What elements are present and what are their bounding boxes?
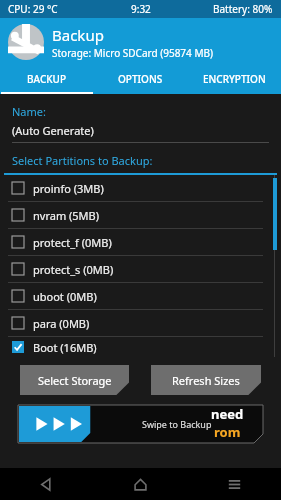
staticText: para (0MB)	[33, 316, 90, 331]
button[interactable]: Select Storage	[20, 365, 129, 395]
staticText: Swipe to Backup	[142, 418, 212, 430]
staticText: OPTIONS	[118, 72, 163, 86]
button[interactable]: Refresh Sizes	[151, 365, 261, 395]
button[interactable]: nvram (5MB)	[12, 202, 265, 228]
staticText: Backup	[52, 25, 104, 45]
staticText: Boot (16MB)	[33, 340, 97, 355]
staticText: Name:	[12, 104, 46, 119]
staticText: rom	[214, 423, 241, 441]
staticText: Select Partitions to Backup:	[12, 153, 153, 168]
staticText: www.needrom.com	[199, 441, 255, 443]
staticText: protect_f (0MB)	[33, 235, 112, 250]
button[interactable]: ENCRYPTION	[187, 66, 281, 92]
button[interactable]: Swipe to Backup	[18, 405, 263, 443]
staticText: need	[211, 405, 244, 423]
button[interactable]: para (0MB)	[12, 310, 265, 336]
staticText: Battery: 80%	[213, 2, 273, 16]
staticText: BACKUP	[27, 72, 67, 86]
staticText: CPU: 29 °C	[8, 2, 58, 16]
button[interactable]: Boot (16MB)	[12, 337, 265, 357]
button[interactable]: Home	[93, 468, 187, 500]
staticText: Select Storage	[38, 373, 112, 388]
staticText: nvram (5MB)	[33, 208, 100, 223]
staticText: (Auto Generate)	[12, 123, 94, 138]
button[interactable]: proinfo (3MB)	[12, 175, 265, 201]
button[interactable]: Recent apps	[187, 468, 281, 500]
staticText: 9:32	[131, 2, 151, 16]
button[interactable]: Back	[0, 468, 93, 500]
button[interactable]: (Auto Generate)	[12, 123, 269, 143]
button[interactable]: BACKUP	[0, 66, 93, 92]
button[interactable]: OPTIONS	[93, 66, 187, 92]
staticText: uboot (0MB)	[33, 289, 97, 304]
button[interactable]: protect_f (0MB)	[12, 229, 265, 255]
staticText: proinfo (3MB)	[33, 181, 104, 196]
staticText: Refresh Sizes	[172, 373, 240, 388]
staticText: protect_s (0MB)	[33, 262, 114, 277]
button[interactable]: protect_s (0MB)	[12, 256, 265, 282]
staticText: Storage: Micro SDCard (95874 MB)	[52, 46, 213, 60]
button[interactable]: uboot (0MB)	[12, 283, 265, 309]
staticText: ENCRYPTION	[203, 72, 266, 86]
